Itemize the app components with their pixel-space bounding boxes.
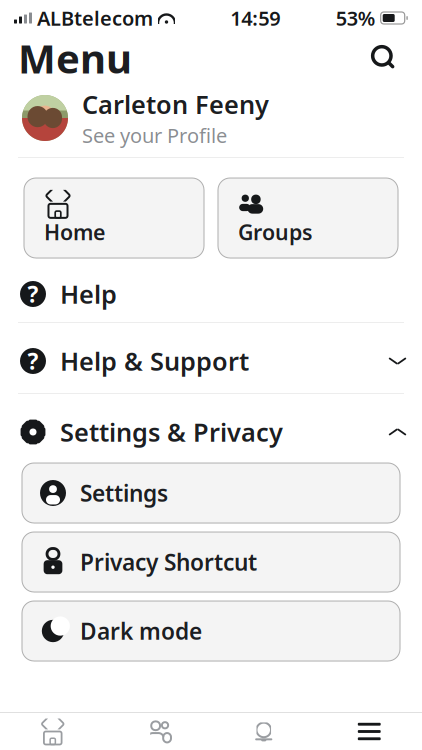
staticText: Carleton Feeny — [82, 87, 269, 121]
staticText: ? — [27, 279, 38, 309]
button[interactable]: Privacy Shortcut — [22, 532, 400, 592]
button[interactable]: Menu — [316, 713, 422, 750]
staticText: Help & Support — [60, 344, 249, 378]
button[interactable]: Groups — [218, 178, 398, 258]
button[interactable]: Dark mode — [22, 601, 400, 661]
staticText: Settings — [80, 478, 168, 508]
button[interactable]: ? — [0, 333, 422, 389]
staticText: Privacy Shortcut — [80, 547, 257, 577]
staticText: Dark mode — [80, 616, 202, 646]
staticText: Groups — [238, 218, 313, 246]
staticText: ? — [27, 346, 38, 376]
button[interactable]: Home — [0, 713, 105, 750]
staticText: Home — [44, 218, 105, 246]
staticText: 53% — [336, 5, 376, 31]
button[interactable]: Search — [364, 38, 404, 78]
staticText: 14:59 — [230, 5, 280, 31]
staticText: ALBtelecom — [37, 5, 153, 31]
button[interactable]: Notifications — [211, 713, 316, 750]
button[interactable]: Settings & Privacy — [0, 404, 422, 460]
button[interactable]: Home — [24, 178, 204, 258]
button[interactable]: ? — [0, 266, 422, 322]
staticText: See your Profile — [82, 122, 227, 149]
button[interactable]: Friends — [105, 713, 211, 750]
button[interactable]: Settings — [22, 463, 400, 523]
staticText: Settings & Privacy — [60, 415, 283, 449]
staticText: Help — [60, 277, 117, 311]
staticText: Menu — [18, 31, 132, 84]
button[interactable]: Carleton Feeny — [0, 85, 422, 151]
